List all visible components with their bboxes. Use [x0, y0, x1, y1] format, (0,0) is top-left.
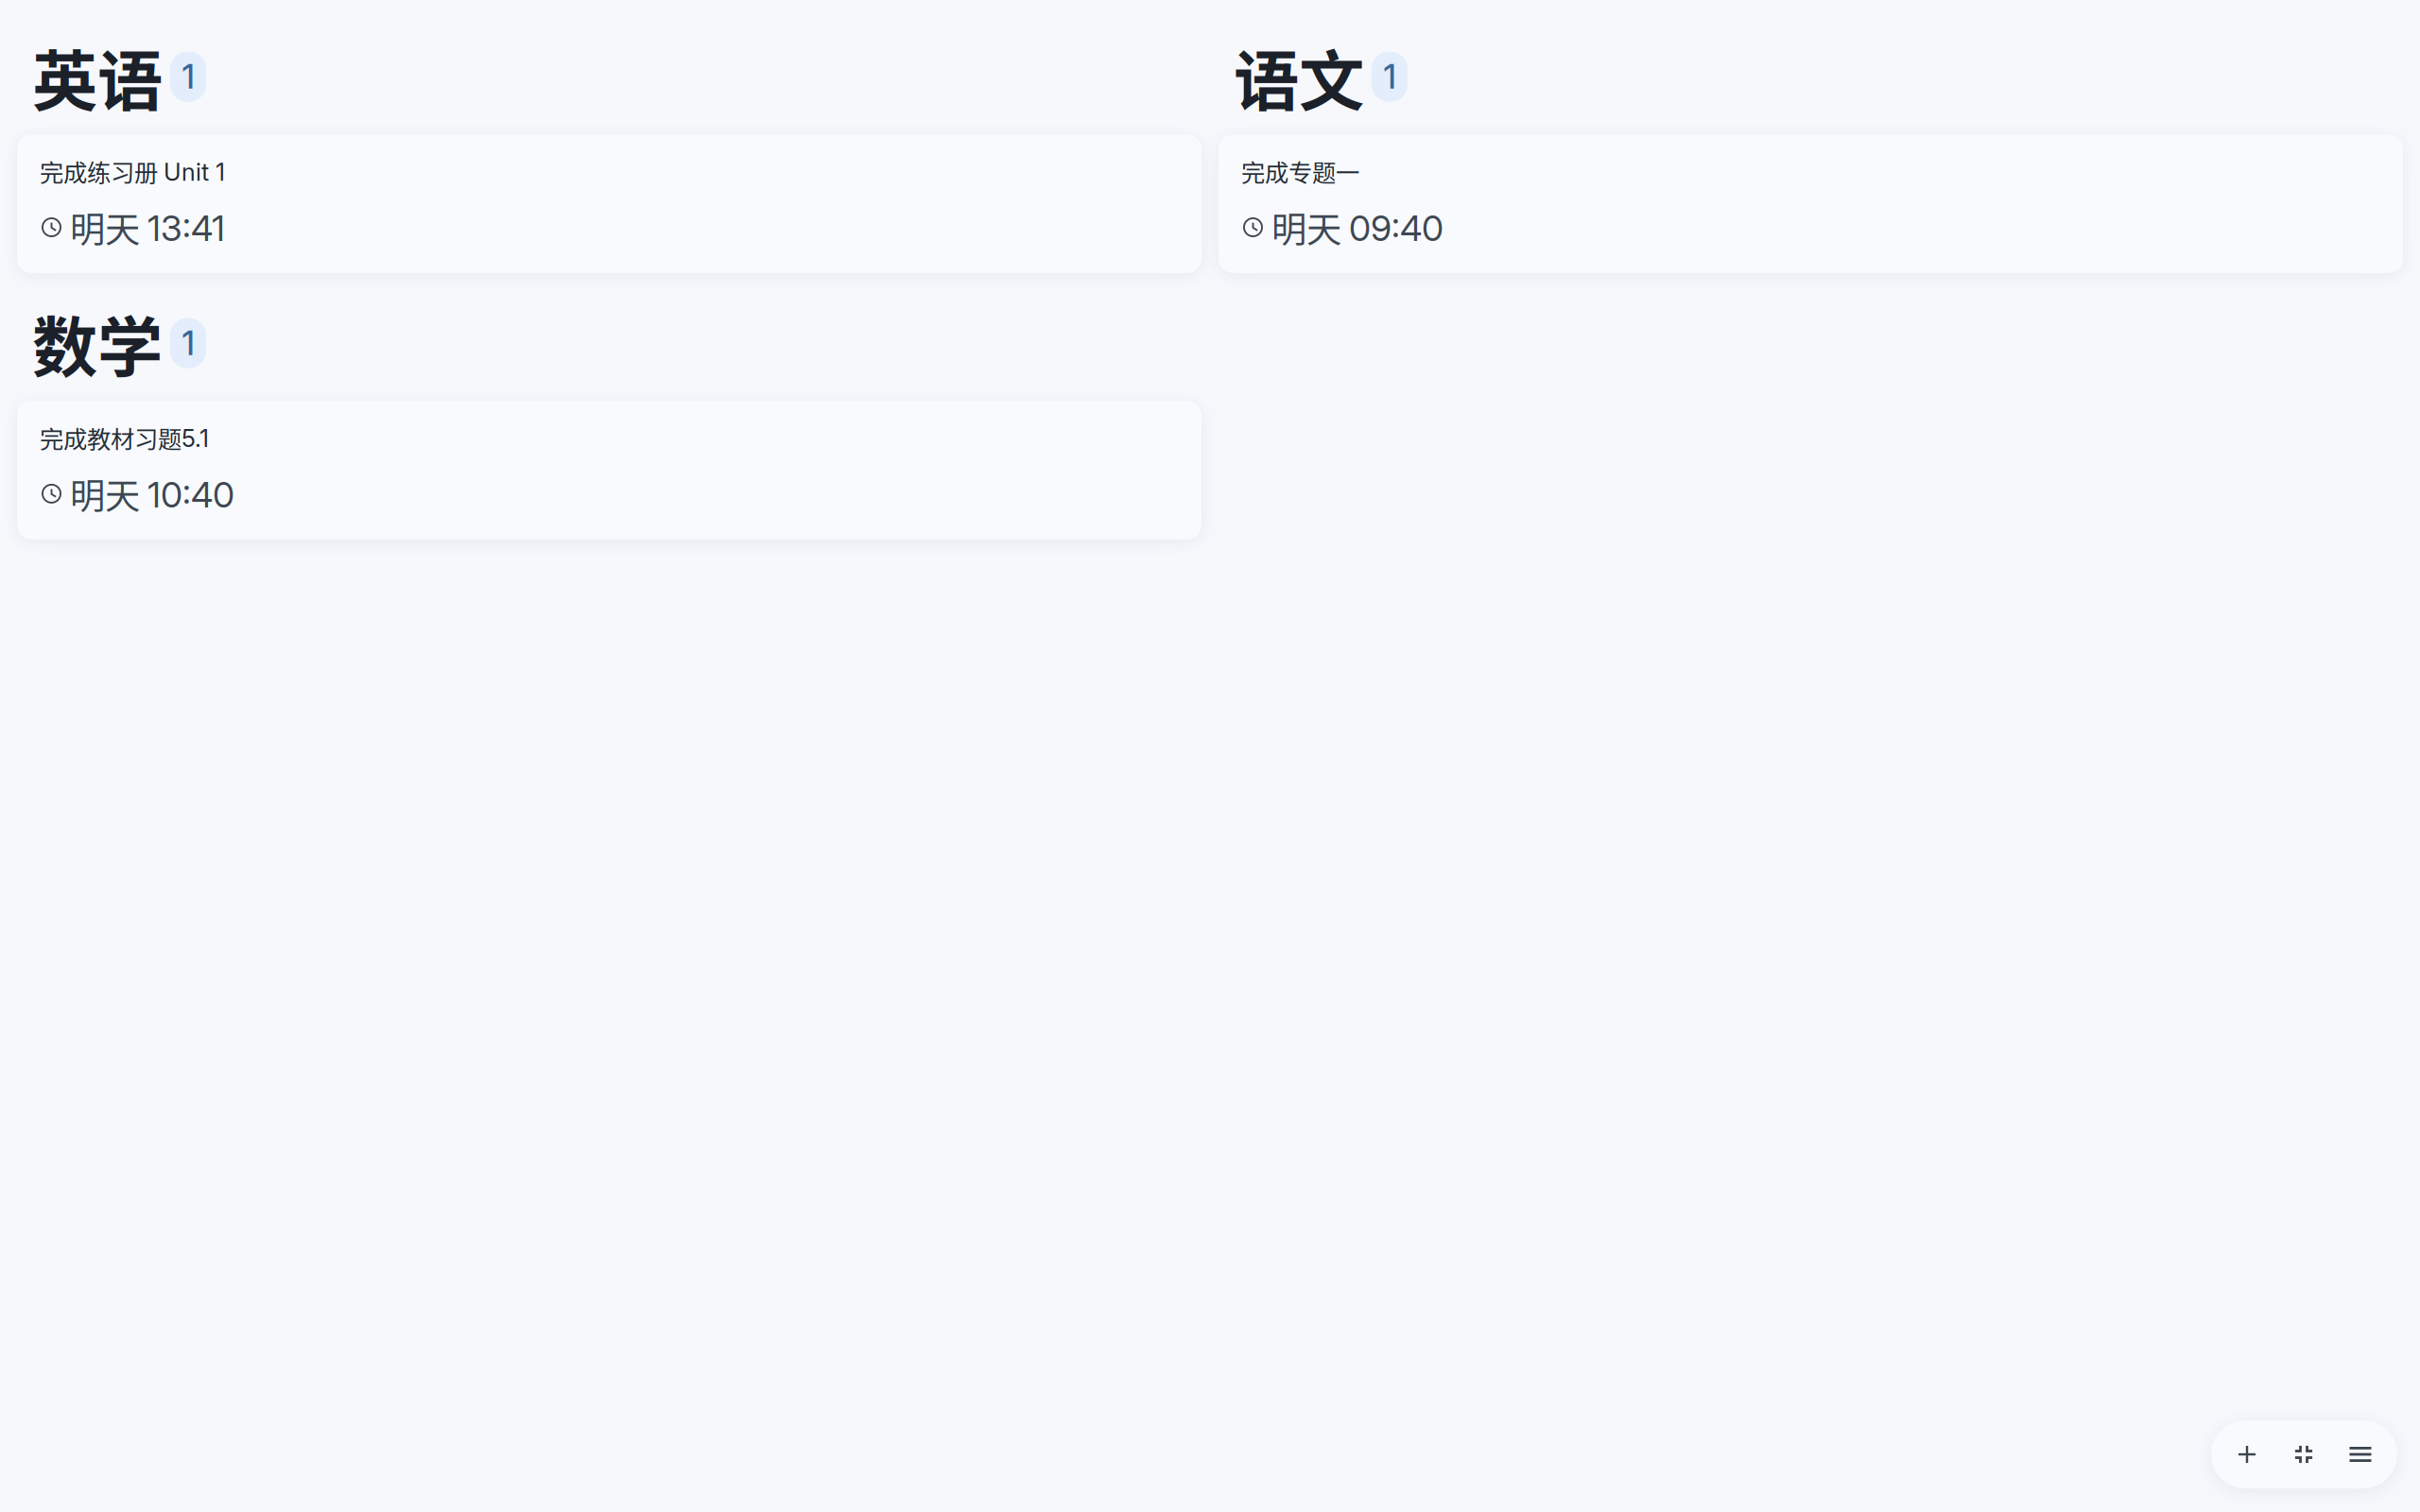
button[interactable]: Collapse all [2275, 1420, 2332, 1488]
staticText: 完成专题一 [1241, 154, 1359, 188]
staticText: 明天 09:40 [1271, 202, 1443, 252]
staticText: 语文 [1234, 29, 1364, 124]
button[interactable]: 数学 [17, 296, 206, 391]
button[interactable]: 完成专题一 [1219, 135, 2403, 273]
button[interactable]: Add task [2219, 1420, 2275, 1488]
button[interactable]: More options [2332, 1420, 2389, 1488]
staticText: 英语 [32, 29, 163, 124]
button[interactable]: 完成教材习题5.1 [17, 401, 1201, 539]
button[interactable]: 英语 [17, 29, 206, 124]
staticText: 数学 [32, 296, 163, 391]
staticText: 明天 10:40 [70, 469, 234, 519]
staticText: 明天 13:41 [70, 202, 225, 252]
staticText: 1 [182, 323, 194, 363]
button[interactable]: 完成练习册 Unit 1 [17, 135, 1201, 273]
staticText: 1 [182, 57, 194, 96]
staticText: 完成教材习题5.1 [40, 421, 209, 455]
staticText: 1 [1383, 57, 1396, 96]
button[interactable]: 语文 [1219, 29, 1408, 124]
staticText: 完成练习册 Unit 1 [40, 154, 225, 188]
